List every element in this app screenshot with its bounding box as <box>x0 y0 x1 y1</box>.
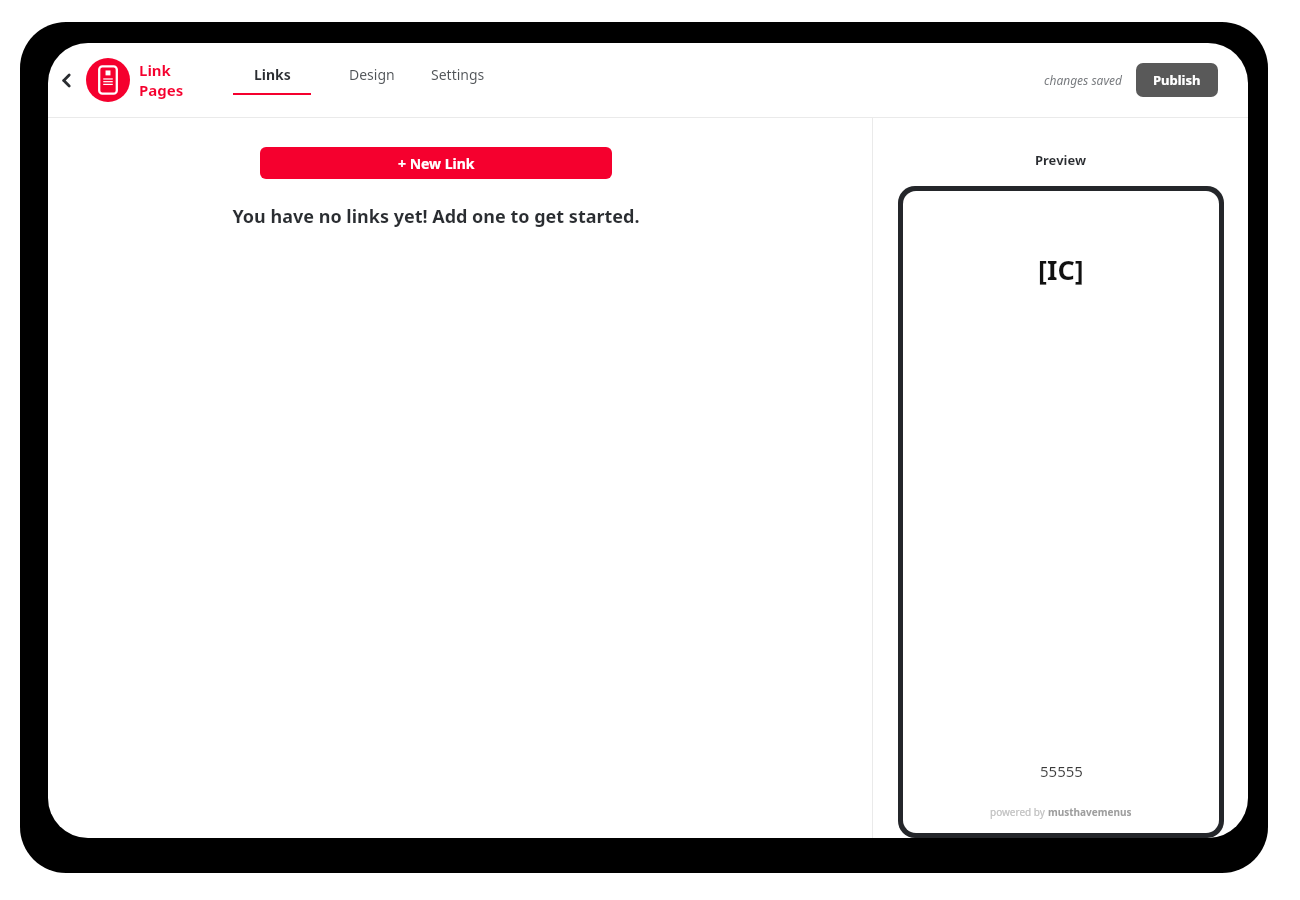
staticText: + New Link <box>398 154 475 173</box>
staticText: Link <box>139 60 171 80</box>
staticText: Design <box>349 65 395 84</box>
staticText: changes saved <box>1044 72 1122 88</box>
staticText: Publish <box>1153 71 1201 89</box>
button[interactable]: Design <box>339 62 405 98</box>
button[interactable]: Publish <box>1136 63 1218 97</box>
button[interactable]: Back <box>50 64 82 96</box>
button[interactable]: + New Link <box>260 147 612 179</box>
staticText: Links <box>254 65 291 84</box>
staticText: Preview <box>1035 151 1087 169</box>
staticText: You have no links yet! Add one to get st… <box>232 204 640 229</box>
staticText: 55555 <box>1040 761 1083 781</box>
button[interactable]: Link <box>86 58 184 102</box>
button[interactable]: Links <box>223 62 321 98</box>
button[interactable]: Settings <box>421 62 495 98</box>
staticText: Settings <box>431 65 485 84</box>
staticText: [IC] <box>1038 251 1084 288</box>
staticText: musthavemenus <box>1048 805 1132 819</box>
staticText: powered by <box>990 805 1048 819</box>
staticText: Pages <box>139 80 184 100</box>
